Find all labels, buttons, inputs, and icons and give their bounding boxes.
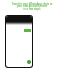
button[interactable]: New chat xyxy=(27,60,31,64)
staticText: Transfer your WhatsApp chats to your new… xyxy=(0,2,64,11)
button[interactable] xyxy=(6,16,32,22)
